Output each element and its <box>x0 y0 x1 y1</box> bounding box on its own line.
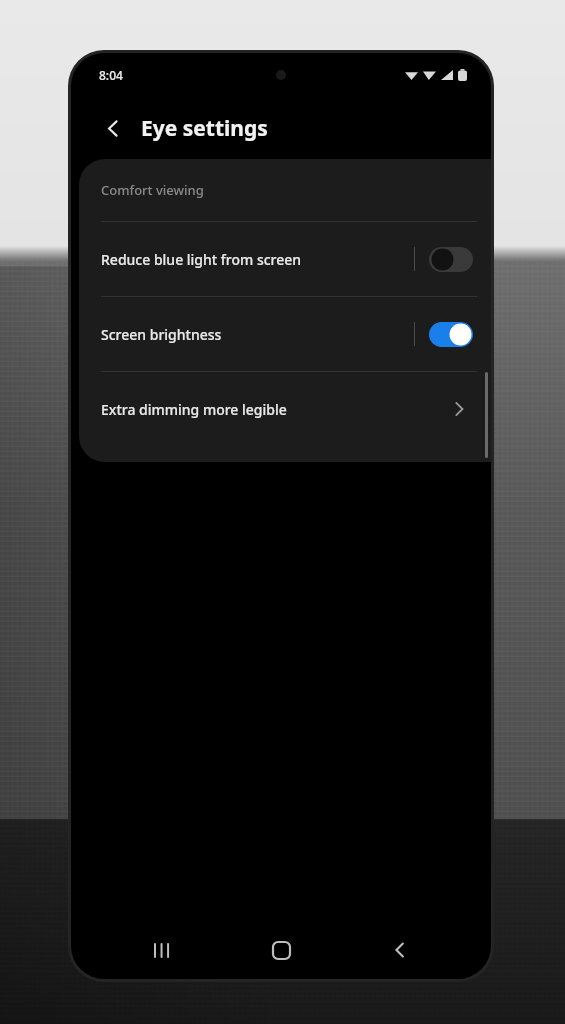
staticText: Comfort viewing <box>101 181 204 199</box>
staticText: Eye settings <box>141 114 268 143</box>
staticText: Reduce blue light from screen <box>101 250 414 269</box>
button[interactable]: Recents <box>134 922 190 978</box>
button[interactable]: Back <box>372 922 428 978</box>
button[interactable]: Off <box>429 247 473 272</box>
button[interactable]: Screen brightness <box>79 297 491 371</box>
button[interactable]: Home <box>253 922 309 978</box>
button[interactable]: Reduce blue light from screen <box>79 222 491 296</box>
staticText: 8:04 <box>99 67 123 83</box>
staticText: Extra dimming more legible <box>101 400 451 419</box>
staticText: Screen brightness <box>101 325 414 344</box>
button[interactable]: Extra dimming more legible <box>79 372 491 446</box>
button[interactable]: On <box>429 322 473 347</box>
button[interactable]: Back <box>93 108 133 148</box>
